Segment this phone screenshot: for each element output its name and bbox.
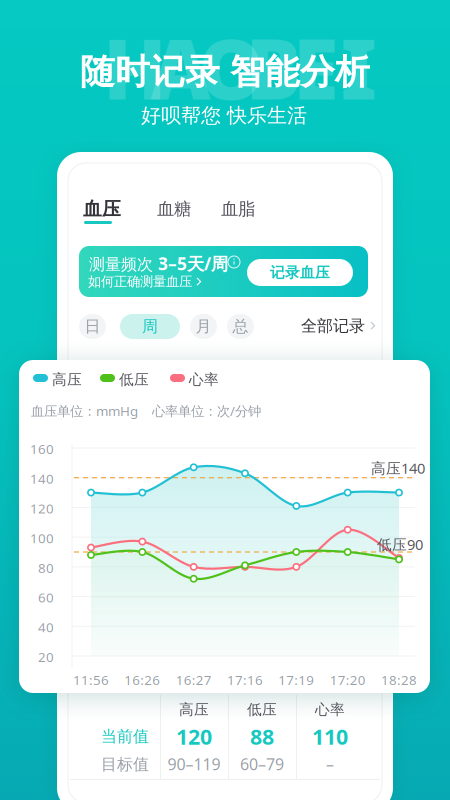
button[interactable]: 全部记录	[307, 316, 375, 336]
staticText: 月	[195, 317, 211, 336]
staticText: 16:27	[176, 671, 212, 689]
staticText: 17:16	[227, 671, 263, 689]
staticText: 心率	[189, 371, 219, 389]
staticText: 如何正确测量血压	[88, 273, 192, 290]
staticText: O	[198, 13, 264, 122]
button[interactable]: 血压	[83, 199, 121, 219]
button[interactable]: 日	[79, 314, 106, 339]
staticText: 17:19	[278, 671, 314, 689]
staticText: 当前值	[101, 726, 149, 746]
button[interactable]: 血糖	[157, 200, 193, 218]
staticText: 高压	[179, 701, 209, 719]
staticText: 血压单位：mmHg	[31, 402, 138, 420]
staticText: 低压90	[377, 534, 423, 554]
staticText: 全部记录	[301, 316, 365, 336]
staticText: 100	[30, 529, 54, 547]
staticText: 3–5天/周	[158, 252, 228, 275]
staticText: 随时记录 智能分析	[80, 51, 370, 93]
button[interactable]: 血脂	[221, 200, 257, 218]
staticText: 心率单位：次/分钟	[152, 402, 261, 420]
staticText: 20	[38, 648, 54, 666]
staticText: 目标值	[101, 754, 149, 774]
staticText: 17:20	[330, 671, 366, 689]
staticText: 血糖	[157, 198, 191, 220]
staticText: 60–79	[240, 753, 284, 775]
staticText: 高压140	[371, 458, 425, 478]
staticText: 低压	[247, 701, 277, 719]
staticText: 高压	[52, 371, 82, 389]
button[interactable]: 如何正确测量血压	[89, 274, 205, 289]
staticText: 80	[38, 559, 54, 577]
staticText: 88	[250, 722, 274, 750]
staticText: E	[293, 13, 338, 122]
staticText: 血压	[83, 197, 121, 220]
staticText: 16:26	[124, 671, 160, 689]
staticText: 日	[84, 317, 100, 336]
staticText: 测量频次：	[89, 254, 169, 274]
button[interactable]: 月	[190, 314, 217, 339]
staticText: B	[245, 13, 301, 122]
staticText: 140	[30, 470, 54, 487]
staticText: 好呗帮您 快乐生活	[141, 103, 307, 128]
button[interactable]: 记录血压	[247, 259, 353, 286]
staticText: 110	[312, 722, 348, 750]
staticText: 60	[38, 589, 54, 606]
staticText: 记录血压	[270, 263, 330, 281]
staticText: 160	[30, 440, 54, 458]
button[interactable]: 总	[227, 314, 254, 339]
staticText: 周	[142, 317, 158, 336]
button[interactable]: 周	[120, 314, 180, 339]
staticText: 120	[176, 722, 212, 750]
staticText: 11:56	[73, 671, 109, 689]
staticText: I	[340, 13, 376, 122]
staticText: 血脂	[221, 198, 255, 220]
staticText: 18:28	[381, 671, 417, 689]
staticText: 120	[30, 499, 54, 517]
staticText: 40	[38, 618, 54, 636]
staticText: –	[326, 753, 334, 775]
staticText: 90–119	[167, 753, 220, 775]
staticText: 低压	[119, 371, 149, 389]
staticText: 总	[232, 317, 248, 336]
staticText: A	[150, 13, 210, 122]
staticText: 心率	[315, 701, 345, 719]
staticText: H	[103, 13, 166, 122]
